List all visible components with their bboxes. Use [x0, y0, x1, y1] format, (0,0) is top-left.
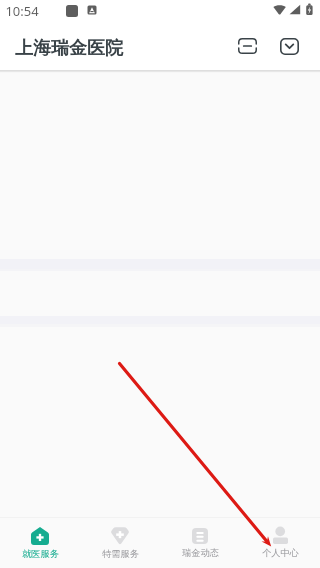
button[interactable]: 特需服务 — [80, 518, 160, 568]
staticText: 瑞金动态 — [182, 547, 219, 559]
staticText: 特需服务 — [102, 548, 139, 560]
staticText: 上海瑞金医院 — [15, 37, 123, 60]
button[interactable]: 个人中心 — [240, 518, 320, 568]
staticText: 10:54 — [5, 2, 39, 20]
staticText: 个人中心 — [262, 547, 299, 559]
button[interactable]: 就医服务 — [0, 518, 80, 568]
button[interactable]: Split screen — [232, 31, 262, 61]
staticText: 就医服务 — [22, 548, 59, 560]
button[interactable]: Expand — [274, 31, 304, 61]
button[interactable]: 瑞金动态 — [160, 518, 240, 568]
